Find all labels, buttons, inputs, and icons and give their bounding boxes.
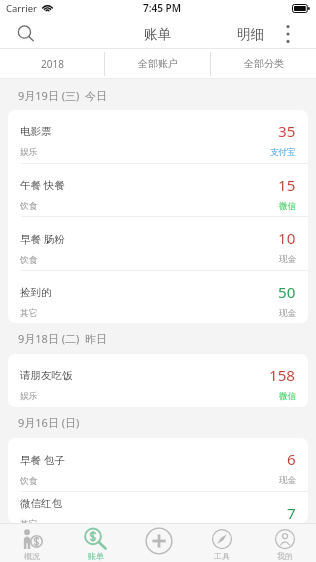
staticText: 7 bbox=[287, 503, 296, 523]
staticText: 明细 bbox=[237, 26, 265, 43]
staticText: 概况 bbox=[24, 551, 40, 561]
button[interactable]: 微信红包 bbox=[8, 492, 308, 523]
staticText: 工具 bbox=[214, 551, 230, 561]
button[interactable]: 全部账户 bbox=[105, 49, 210, 78]
staticText: 35 bbox=[278, 121, 296, 142]
staticText: Carrier bbox=[6, 2, 37, 15]
button[interactable]: Tools bbox=[190, 524, 253, 562]
staticText: 全部分类 bbox=[244, 57, 284, 70]
staticText: 早餐 包子 bbox=[20, 453, 65, 467]
staticText: 50 bbox=[278, 282, 296, 303]
staticText: 支付宝 bbox=[270, 147, 296, 158]
staticText: 7:45 PM bbox=[143, 1, 181, 15]
staticText: 15 bbox=[278, 175, 296, 196]
button[interactable]: Search bbox=[12, 20, 39, 47]
button[interactable]: Profile bbox=[253, 524, 316, 562]
staticText: 饮食 bbox=[20, 255, 38, 266]
staticText: 捡到的 bbox=[20, 286, 52, 299]
button[interactable]: 2018 bbox=[0, 49, 104, 78]
button[interactable]: Bills bbox=[64, 524, 127, 562]
staticText: 娱乐 bbox=[20, 391, 38, 402]
button[interactable]: 捡到的 bbox=[8, 271, 308, 323]
staticText: 其它 bbox=[20, 519, 38, 523]
button[interactable]: 请朋友吃饭 bbox=[8, 354, 308, 407]
button[interactable]: 电影票 bbox=[8, 110, 308, 163]
staticText: 娱乐 bbox=[20, 147, 38, 158]
staticText: 早餐 肠粉 bbox=[20, 232, 65, 246]
staticText: 9月18日 (二) 昨日 bbox=[18, 331, 108, 346]
staticText: 微信 bbox=[279, 201, 296, 212]
staticText: 9月19日 (三) 今日 bbox=[18, 88, 108, 103]
staticText: 饮食 bbox=[20, 476, 38, 487]
button[interactable]: More options bbox=[276, 22, 300, 46]
staticText: 午餐 快餐 bbox=[20, 178, 65, 192]
staticText: 9月16日 (日) bbox=[18, 415, 80, 430]
button[interactable]: 早餐 包子 bbox=[8, 438, 308, 491]
staticText: 电影票 bbox=[20, 125, 52, 138]
button[interactable]: 全部分类 bbox=[211, 49, 316, 78]
staticText: 微信红包 bbox=[20, 497, 62, 510]
staticText: 现金 bbox=[279, 475, 296, 486]
staticText: 账单 bbox=[144, 26, 172, 43]
staticText: 微信 bbox=[279, 391, 296, 402]
staticText: 我的 bbox=[277, 551, 293, 561]
staticText: 请朋友吃饭 bbox=[20, 369, 73, 382]
staticText: 其它 bbox=[20, 308, 38, 319]
staticText: 158 bbox=[269, 365, 296, 386]
staticText: 现金 bbox=[279, 254, 296, 265]
staticText: 现金 bbox=[279, 308, 296, 319]
button[interactable]: 午餐 快餐 bbox=[8, 164, 308, 216]
button[interactable]: Overview bbox=[0, 524, 64, 562]
staticText: 2018 bbox=[41, 57, 64, 71]
button[interactable]: 明细 bbox=[231, 21, 271, 48]
button[interactable]: Add record bbox=[127, 524, 190, 562]
staticText: 账单 bbox=[88, 551, 104, 561]
button[interactable]: 早餐 肠粉 bbox=[8, 217, 308, 270]
staticText: 全部账户 bbox=[138, 57, 178, 70]
staticText: 6 bbox=[287, 449, 296, 470]
staticText: 饮食 bbox=[20, 201, 38, 212]
staticText: 10 bbox=[278, 228, 296, 249]
